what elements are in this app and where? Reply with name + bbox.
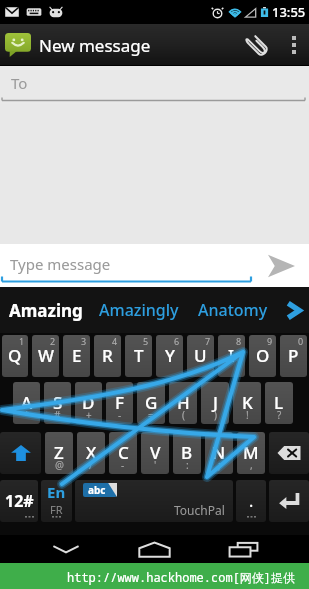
staticText: TouchPal	[174, 502, 225, 518]
button[interactable]: X	[77, 432, 105, 474]
button[interactable]: M	[237, 432, 265, 474]
staticText: W	[38, 344, 54, 367]
staticText: C	[118, 441, 129, 464]
button[interactable]: Amazing	[0, 287, 91, 333]
button[interactable]: J	[201, 382, 229, 424]
staticText: D	[82, 391, 95, 414]
button[interactable]: B	[173, 432, 201, 474]
staticText: A	[21, 391, 33, 414]
staticText: B	[181, 441, 193, 464]
button[interactable]: W	[32, 335, 59, 377]
button[interactable]: V	[141, 432, 169, 474]
staticText: X	[86, 441, 97, 464]
button[interactable]: Recents	[199, 535, 288, 563]
button[interactable]: T	[125, 335, 152, 377]
button[interactable]: Amazingly	[91, 287, 187, 333]
staticText: (	[182, 408, 185, 422]
button[interactable]: D	[75, 382, 102, 424]
staticText: 1	[19, 335, 25, 347]
button[interactable]: O	[249, 335, 276, 377]
staticText: N	[212, 441, 226, 464]
staticText: =	[148, 408, 154, 422]
staticText: R	[102, 344, 113, 367]
staticText: !	[246, 408, 249, 422]
staticText: -	[121, 458, 125, 472]
button[interactable]: Home	[110, 535, 199, 563]
button[interactable]: Space	[75, 480, 233, 522]
button[interactable]: R	[94, 335, 121, 377]
staticText: 12#	[5, 490, 34, 512]
staticText: S	[53, 391, 63, 414]
button[interactable]: Back	[21, 535, 110, 563]
button[interactable]: Anatomy	[187, 287, 278, 333]
staticText: 4	[112, 335, 118, 347]
staticText: M	[243, 441, 259, 464]
button[interactable]: More suggestions	[278, 287, 309, 333]
staticText: En	[47, 482, 66, 502]
button[interactable]: F	[106, 382, 133, 424]
button[interactable]: P	[280, 335, 307, 377]
staticText: Anatomy	[198, 299, 268, 321]
button[interactable]: Attach	[235, 24, 279, 66]
staticText: 0	[298, 335, 304, 347]
staticText: V	[150, 441, 161, 464]
button[interactable]: K	[233, 382, 261, 424]
button[interactable]: N	[205, 432, 233, 474]
button[interactable]: Shift	[0, 432, 41, 474]
staticText: '	[154, 458, 157, 472]
button[interactable]: Z	[45, 432, 73, 474]
staticText: 8	[236, 335, 242, 347]
staticText: http://www.hackhome.com[网侠]提供	[67, 569, 296, 585]
staticText: P	[288, 344, 299, 367]
staticText: 7	[205, 335, 211, 347]
button[interactable]: L	[265, 382, 293, 424]
staticText: #	[54, 408, 61, 422]
button[interactable]: Q	[2, 335, 28, 377]
button[interactable]: E	[63, 335, 90, 377]
button[interactable]: Language	[41, 480, 72, 522]
staticText: J	[213, 391, 218, 414]
staticText: L	[274, 391, 284, 414]
button[interactable]: A	[13, 382, 40, 424]
staticText: Y	[165, 344, 175, 367]
staticText: FR	[50, 502, 63, 517]
staticText: 9	[267, 335, 273, 347]
staticText: .	[249, 490, 254, 512]
staticText: 2	[50, 335, 56, 347]
button[interactable]: Type message	[0, 244, 254, 287]
staticText: ,	[250, 458, 253, 472]
staticText: O	[256, 344, 270, 367]
button[interactable]: 12#	[0, 480, 38, 522]
button[interactable]: Send	[254, 244, 309, 287]
staticText: +	[86, 408, 92, 422]
button[interactable]: U	[187, 335, 214, 377]
staticText: Amazing	[9, 299, 83, 322]
staticText: H	[177, 391, 190, 414]
staticText: *	[24, 408, 30, 422]
staticText: 13:55	[272, 3, 306, 21]
staticText: To	[11, 73, 28, 93]
staticText: E	[72, 344, 82, 367]
staticText: K	[242, 391, 253, 414]
staticText: :	[186, 458, 189, 472]
button[interactable]: More options	[279, 24, 309, 66]
staticText: 3	[81, 335, 87, 347]
button[interactable]: S	[44, 382, 71, 424]
staticText: /	[89, 458, 93, 472]
staticText: Q	[8, 344, 22, 367]
button[interactable]: .	[236, 480, 266, 522]
staticText: Amazingly	[99, 299, 179, 321]
button[interactable]: C	[109, 432, 137, 474]
staticText: 6	[174, 335, 180, 347]
staticText: )	[214, 408, 217, 422]
button[interactable]: I	[218, 335, 245, 377]
staticText: abc	[88, 483, 106, 497]
staticText: -	[118, 408, 122, 422]
staticText: F	[115, 391, 124, 414]
button[interactable]: Enter	[269, 480, 309, 522]
staticText: @	[55, 458, 64, 472]
button[interactable]: G	[137, 382, 165, 424]
button[interactable]: Backspace	[269, 432, 309, 474]
button[interactable]: H	[169, 382, 197, 424]
button[interactable]: Y	[156, 335, 183, 377]
